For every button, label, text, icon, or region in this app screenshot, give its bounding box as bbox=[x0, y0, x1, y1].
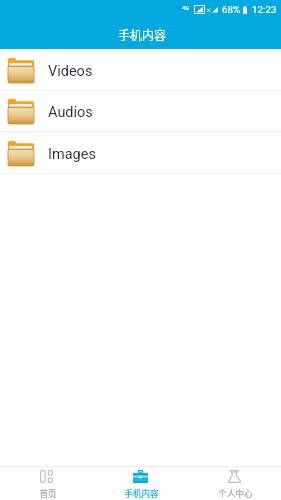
staticText: 首页 bbox=[39, 487, 57, 499]
button[interactable]: Videos bbox=[0, 49, 281, 91]
button[interactable]: 个人中心 bbox=[187, 467, 281, 500]
button[interactable]: 手机内容 bbox=[93, 467, 187, 500]
staticText: 12:23 bbox=[252, 4, 277, 15]
staticText: Videos bbox=[48, 63, 93, 80]
staticText: 手机内容 bbox=[118, 26, 167, 43]
staticText: 4G bbox=[182, 4, 190, 11]
staticText: Audios bbox=[48, 104, 93, 121]
staticText: 68% bbox=[222, 4, 241, 15]
staticText: 手机内容 bbox=[124, 487, 159, 499]
button[interactable]: Audios bbox=[0, 91, 281, 132]
other: 手机内容 bbox=[133, 470, 148, 483]
button[interactable]: 首页 bbox=[0, 467, 93, 500]
other: 首页 bbox=[40, 470, 53, 483]
other: 个人中心 bbox=[228, 470, 241, 483]
button[interactable]: Images bbox=[0, 132, 281, 174]
staticText: 个人中心 bbox=[218, 487, 253, 499]
staticText: Images bbox=[48, 146, 96, 163]
